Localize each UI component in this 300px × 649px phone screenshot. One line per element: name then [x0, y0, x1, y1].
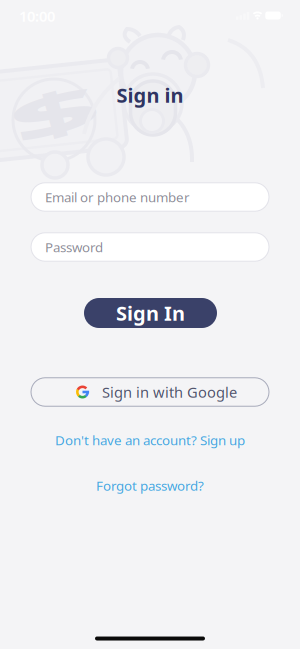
staticText: Don't have an account? Sign up [55, 431, 245, 449]
staticText: Email or phone number [45, 188, 190, 206]
staticText: $ [35, 69, 73, 157]
staticText: Sign In [116, 300, 185, 326]
staticText: Forgot password? [96, 477, 204, 494]
button[interactable]: Password [31, 233, 269, 261]
staticText: Password [45, 238, 103, 256]
button[interactable]: Don't have an account? Sign up [55, 431, 245, 449]
button[interactable]: Sign In [84, 298, 217, 328]
button[interactable]: Email or phone number [31, 183, 269, 211]
button[interactable]: Sign in with Google [31, 378, 269, 406]
staticText: 10:00 [19, 6, 55, 26]
button[interactable]: Forgot password? [96, 477, 204, 494]
staticText: Sign in [116, 82, 183, 108]
staticText: Sign in with Google [102, 382, 237, 402]
